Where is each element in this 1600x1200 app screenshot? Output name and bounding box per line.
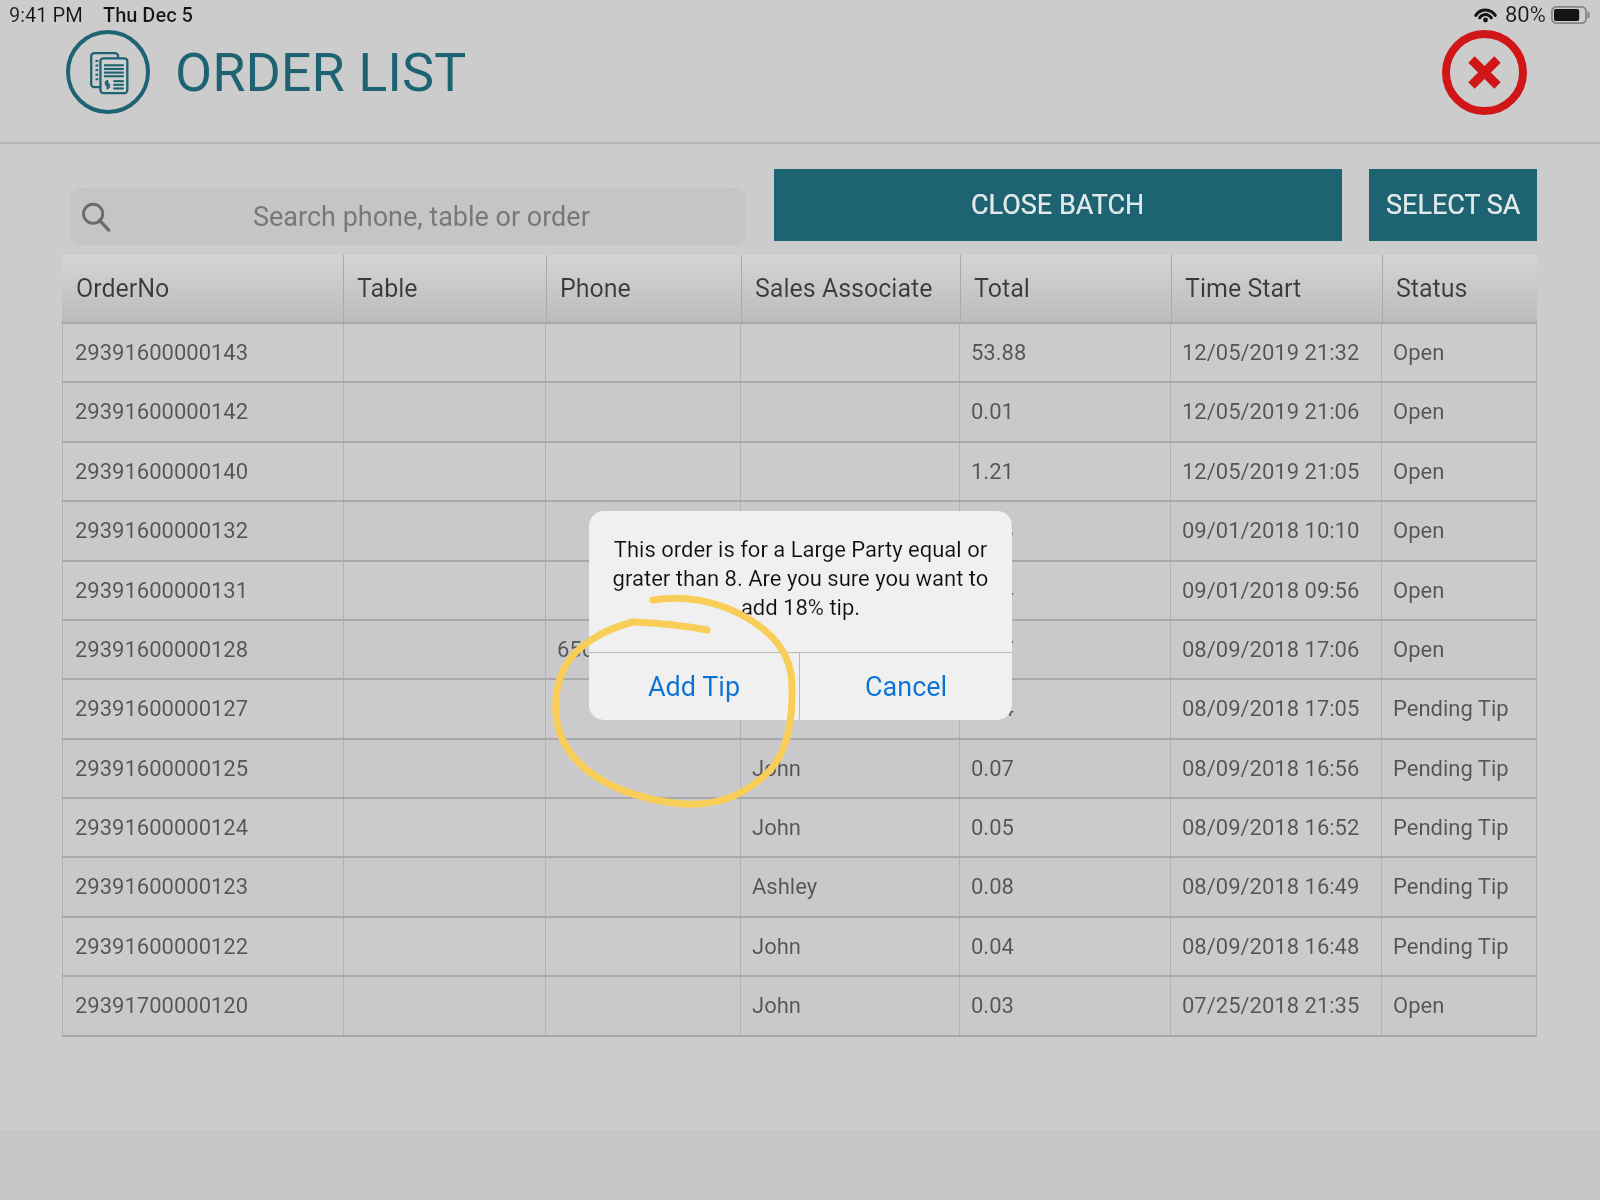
staticText: 53.88	[971, 340, 1027, 366]
staticText: 08/09/2018 16:56	[1182, 756, 1360, 782]
staticText: Cancel	[865, 671, 948, 703]
staticText: Open	[1393, 340, 1445, 366]
staticText: 29391600000132	[75, 518, 249, 544]
staticText: 12/05/2019 21:05	[1182, 459, 1360, 485]
staticText: 29391600000124	[75, 815, 249, 841]
staticText: Open	[1393, 993, 1445, 1019]
staticText: John	[752, 993, 801, 1019]
staticText: Phone	[560, 274, 631, 303]
staticText: 80%	[1505, 2, 1546, 28]
staticText: Open	[1393, 578, 1445, 604]
staticText: 29391600000142	[75, 399, 249, 425]
staticText: Sales Associate	[755, 274, 933, 303]
staticText: 09/01/2018 10:10	[1182, 518, 1360, 544]
staticText: 29391600000127	[75, 696, 249, 722]
button[interactable]: 29391600000128	[62, 621, 1537, 678]
staticText: OrderNo	[76, 274, 170, 303]
button[interactable]: Close	[1437, 25, 1532, 120]
staticText: 07/25/2018 21:35	[1182, 993, 1360, 1019]
staticText: 29391600000128	[75, 637, 249, 663]
button[interactable]: 29391600000142	[62, 383, 1537, 441]
staticText: 0.04	[971, 696, 1014, 722]
staticText: John	[752, 815, 801, 841]
staticText: 650	[557, 637, 595, 663]
staticText: Ashley	[752, 874, 818, 900]
staticText: SELECT SA	[1386, 189, 1521, 221]
staticText: 0.01	[971, 399, 1014, 425]
button[interactable]: 29391600000131	[62, 562, 1537, 619]
staticText: 1.21	[971, 459, 1014, 485]
button[interactable]: 29391600000132	[62, 502, 1537, 560]
staticText: This order is for a Large Party equal or…	[589, 537, 1012, 620]
button[interactable]: 29391600000140	[62, 443, 1537, 500]
staticText: 29391600000123	[75, 874, 249, 900]
staticText: 0.04	[971, 578, 1014, 604]
button[interactable]: 29391600000124	[62, 799, 1537, 856]
button[interactable]: Cancel	[800, 653, 1012, 720]
staticText: 08/09/2018 16:48	[1182, 934, 1360, 960]
staticText: 29391600000143	[75, 340, 249, 366]
staticText: Add Tip	[648, 671, 741, 703]
button[interactable]: 29391600000127	[62, 680, 1537, 738]
staticText: Open	[1393, 399, 1445, 425]
staticText: Pending Tip	[1393, 756, 1509, 782]
staticText: 0.07	[971, 756, 1014, 782]
staticText: Total	[974, 274, 1030, 303]
staticText: Open	[1393, 518, 1445, 544]
staticText: 12/05/2019 21:06	[1182, 399, 1360, 425]
staticText: John	[752, 756, 801, 782]
staticText: 29391600000140	[75, 459, 249, 485]
staticText: 29391700000120	[75, 993, 249, 1019]
staticText: 29391600000125	[75, 756, 249, 782]
staticText: 29391600000131	[75, 578, 249, 604]
staticText: Time Start	[1185, 274, 1302, 303]
staticText: 08/09/2018 16:49	[1182, 874, 1360, 900]
staticText: 0.03	[971, 993, 1014, 1019]
staticText: 08/09/2018 17:05	[1182, 696, 1360, 722]
staticText: Pending Tip	[1393, 874, 1509, 900]
staticText: Pending Tip	[1393, 815, 1509, 841]
staticText: Thu Dec 5	[103, 3, 193, 26]
staticText: CLOSE BATCH	[971, 189, 1145, 221]
staticText: 0.04	[971, 934, 1014, 960]
button[interactable]: SELECT SA	[1369, 169, 1537, 241]
staticText: Status	[1396, 274, 1468, 303]
staticText: Open	[1393, 637, 1445, 663]
staticText: Pending Tip	[1393, 696, 1509, 722]
staticText: 9:41 PM	[9, 3, 83, 26]
staticText: 0.08	[971, 874, 1014, 900]
staticText: 0.08	[971, 518, 1014, 544]
staticText: 12/05/2019 21:32	[1182, 340, 1360, 366]
staticText: ORDER LIST	[175, 41, 467, 104]
staticText: Table	[357, 274, 418, 303]
staticText: 0.07	[971, 637, 1014, 663]
staticText: John	[752, 934, 801, 960]
button[interactable]: 29391600000125	[62, 740, 1537, 797]
button[interactable]: CLOSE BATCH	[774, 169, 1342, 241]
staticText: 08/09/2018 16:52	[1182, 815, 1360, 841]
button[interactable]: 29391700000120	[62, 977, 1537, 1035]
button[interactable]: 29391600000143	[62, 324, 1537, 381]
staticText: Search phone, table or order	[253, 201, 590, 233]
button[interactable]: Add Tip	[589, 653, 799, 720]
staticText: Pending Tip	[1393, 934, 1509, 960]
button[interactable]: 29391600000123	[62, 858, 1537, 916]
staticText: 08/09/2018 17:06	[1182, 637, 1360, 663]
staticText: Open	[1393, 459, 1445, 485]
staticText: 29391600000122	[75, 934, 249, 960]
staticText: 09/01/2018 09:56	[1182, 578, 1360, 604]
staticText: 0.05	[971, 815, 1014, 841]
button[interactable]: 29391600000122	[62, 918, 1537, 975]
button[interactable]: Search phone, table or order	[70, 188, 746, 245]
